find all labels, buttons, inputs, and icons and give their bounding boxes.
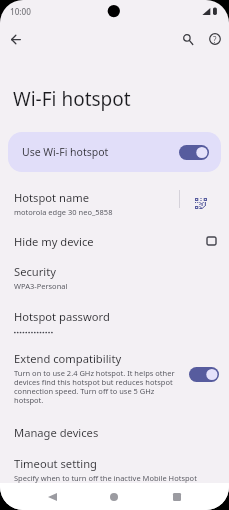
button[interactable]: Hide my device: [0, 228, 229, 250]
button[interactable]: Hotspot name: [0, 184, 229, 218]
button[interactable]: Back: [41, 486, 63, 508]
button[interactable]: Use Wi-Fi hotspot: [8, 132, 221, 172]
staticText: Hotspot password: [14, 309, 110, 324]
button[interactable]: [179, 145, 209, 160]
staticText: 10:00: [10, 6, 31, 17]
staticText: ?: [213, 34, 217, 45]
staticText: Hide my device: [14, 234, 94, 249]
staticText: Timeout setting: [14, 456, 97, 471]
staticText: motorola edge 30 neo_5858: [14, 207, 113, 217]
button[interactable]: [189, 367, 219, 382]
staticText: Hotspot name: [14, 190, 90, 205]
button[interactable]: Hotspot password: [0, 303, 229, 337]
button[interactable]: Hide my device: [206, 236, 217, 246]
staticText: Wi-Fi hotspot: [13, 86, 131, 112]
staticText: Manage devices: [14, 425, 99, 440]
button[interactable]: Share hotspot QR code: [195, 198, 207, 209]
button[interactable]: Recent apps: [166, 486, 188, 508]
staticText: Extend compatibility: [14, 351, 122, 366]
button[interactable]: Home: [103, 486, 125, 508]
staticText: Security: [14, 264, 56, 279]
button[interactable]: Search: [174, 25, 202, 53]
button[interactable]: Back: [2, 25, 30, 53]
button[interactable]: Extend compatibility: [0, 346, 229, 408]
button[interactable]: Security: [0, 258, 229, 292]
staticText: Turn on to use 2.4 GHz hotspot. It helps…: [14, 368, 182, 406]
staticText: WPA3-Personal: [14, 281, 68, 291]
staticText: Specify when to turn off the inactive Mo…: [14, 473, 197, 483]
button[interactable]: Timeout setting: [0, 450, 229, 484]
button[interactable]: Help: [201, 25, 229, 53]
button[interactable]: Manage devices: [0, 419, 229, 441]
staticText: Use Wi-Fi hotspot: [22, 145, 109, 159]
